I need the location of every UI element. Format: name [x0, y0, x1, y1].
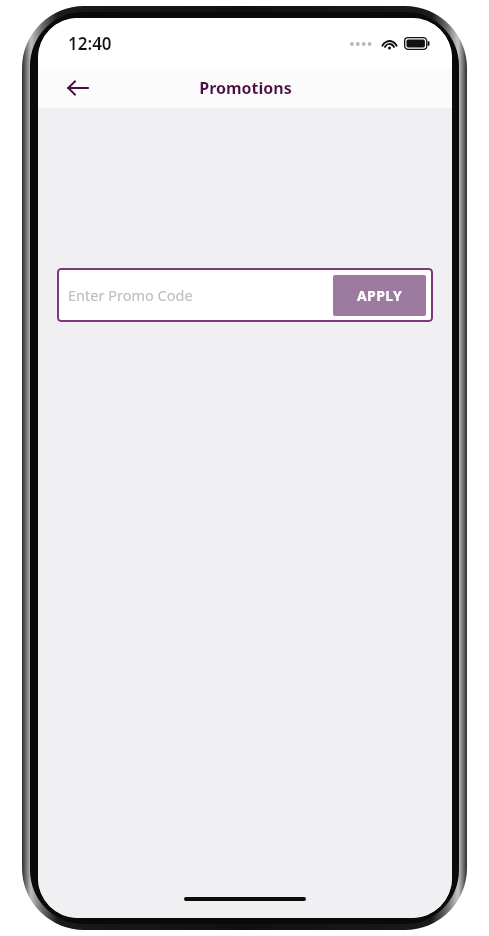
- staticText: Promotions: [199, 77, 292, 99]
- staticText: Enter Promo Code: [68, 285, 333, 305]
- button[interactable]: APPLY: [333, 275, 426, 316]
- button[interactable]: Enter Promo Code: [57, 268, 433, 322]
- staticText: APPLY: [357, 286, 403, 305]
- button[interactable]: Back: [58, 68, 98, 108]
- staticText: 12:40: [68, 32, 112, 55]
